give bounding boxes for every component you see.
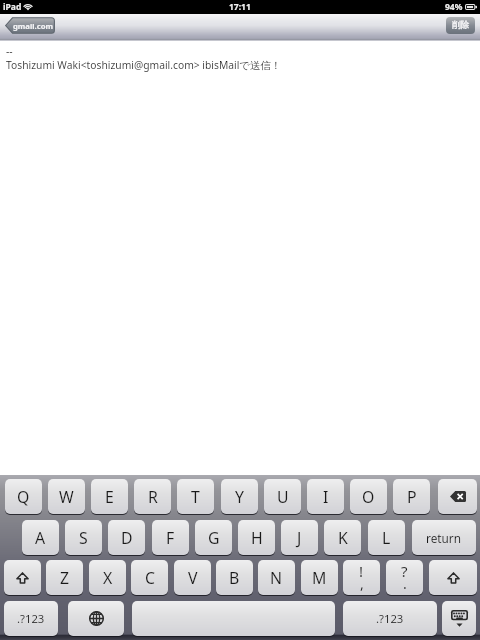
staticText: Z [60,567,70,589]
button[interactable]: O [350,479,387,514]
button[interactable]: 削除 [446,17,475,34]
staticText: ! [359,561,364,581]
staticText: W [59,486,74,508]
staticText: Q [17,486,30,508]
button[interactable]: Space [132,601,335,636]
button[interactable]: J [281,520,318,555]
staticText: .?123 [376,611,404,626]
staticText: E [105,486,114,508]
button[interactable]: Hide keyboard [442,601,476,636]
staticText: L [382,527,391,549]
button[interactable]: Shift [4,560,41,595]
staticText: K [338,527,348,549]
button[interactable]: B [216,560,253,595]
button[interactable]: W [48,479,85,514]
button[interactable]: E [91,479,128,514]
staticText: G [208,527,220,549]
staticText: R [148,486,158,508]
button[interactable]: Y [221,479,258,514]
staticText: .?123 [17,611,45,626]
button[interactable]: G [195,520,232,555]
staticText: 94% [445,1,463,13]
staticText: H [251,527,263,549]
staticText: N [270,567,283,589]
button[interactable]: Backspace [438,479,477,514]
button[interactable]: Shift [429,560,477,595]
button[interactable]: U [264,479,301,514]
staticText: C [145,567,155,589]
button[interactable]: ! [343,560,380,595]
button[interactable]: V [174,560,211,595]
button[interactable]: H [238,520,275,555]
button[interactable]: .?123 [343,601,437,636]
button[interactable]: K [324,520,361,555]
other: Wi-Fi [23,4,33,10]
staticText: return [426,530,462,546]
staticText: I [323,486,329,508]
button[interactable]: T [177,479,214,514]
staticText: B [229,567,240,589]
staticText: F [166,527,175,549]
staticText: M [312,567,327,589]
button[interactable]: Next keyboard [68,601,124,636]
button[interactable]: .?123 [4,601,58,636]
button[interactable]: X [89,560,126,595]
staticText: A [35,527,46,549]
staticText: Y [235,486,244,508]
button[interactable]: M [301,560,338,595]
button[interactable]: N [258,560,295,595]
staticText: O [362,486,375,508]
button[interactable]: L [368,520,405,555]
button[interactable]: P [393,479,430,514]
staticText: ? [401,561,408,581]
button[interactable]: F [152,520,189,555]
staticText: V [188,567,198,589]
staticText: , [360,574,364,593]
staticText: 削除 [452,20,469,31]
button[interactable]: Q [5,479,42,514]
staticText: P [407,486,417,508]
staticText: Toshizumi Waki<toshizumi@gmail.com> ibis… [6,58,281,72]
button[interactable]: D [108,520,145,555]
staticText: 17:11 [229,1,251,13]
button[interactable]: return [412,520,476,555]
button[interactable]: ? [386,560,423,595]
staticText: X [103,567,113,589]
staticText: iPad [3,1,22,13]
button[interactable]: R [134,479,171,514]
staticText: . [403,574,407,593]
staticText: U [277,486,289,508]
staticText: D [121,527,133,549]
button[interactable]: gmail.com [5,17,55,34]
button[interactable]: S [65,520,102,555]
staticText: S [79,527,88,549]
staticText: J [297,527,302,549]
button[interactable]: C [131,560,168,595]
button[interactable]: I [307,479,344,514]
button[interactable]: A [22,520,59,555]
staticText: -- [6,44,13,58]
staticText: T [191,486,200,508]
staticText: gmail.com [13,21,53,31]
button[interactable]: Z [46,560,83,595]
